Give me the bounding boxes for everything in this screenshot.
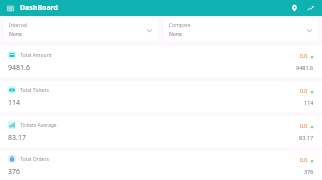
staticText: 0.0 bbox=[300, 88, 308, 95]
staticText: DashBoard bbox=[20, 3, 59, 13]
staticText: 9481.6 bbox=[296, 64, 314, 71]
staticText: 114 bbox=[304, 99, 314, 106]
staticText: 0.0 bbox=[300, 157, 308, 164]
button[interactable]: Interval bbox=[4, 19, 158, 41]
staticText: None bbox=[9, 31, 22, 38]
staticText: 376 bbox=[8, 167, 21, 177]
button[interactable]: Menu bbox=[5, 3, 16, 14]
button[interactable]: Location bbox=[289, 3, 300, 14]
staticText: Tickets Average bbox=[20, 122, 57, 129]
button[interactable]: Total Orders bbox=[0, 151, 322, 180]
staticText: None bbox=[169, 31, 182, 38]
staticText: 0.0 bbox=[300, 123, 308, 130]
staticText: 9481.6 bbox=[8, 63, 30, 73]
button[interactable]: Trends bbox=[305, 3, 316, 14]
staticText: Interval bbox=[9, 22, 28, 29]
button[interactable]: Total Tickets bbox=[0, 81, 322, 112]
staticText: Total Amount bbox=[20, 52, 52, 59]
button[interactable]: Total Amount bbox=[0, 46, 322, 77]
staticText: Total Orders bbox=[20, 156, 49, 163]
staticText: Total Tickets bbox=[20, 87, 49, 94]
staticText: 114 bbox=[8, 98, 21, 108]
staticText: 83.17 bbox=[299, 134, 314, 141]
button[interactable]: Compare bbox=[164, 19, 318, 41]
button[interactable]: Tickets Average bbox=[0, 116, 322, 147]
staticText: 376 bbox=[304, 168, 314, 175]
staticText: 83.17 bbox=[8, 133, 26, 143]
staticText: Compare bbox=[169, 22, 191, 29]
staticText: 0.0 bbox=[300, 53, 308, 60]
